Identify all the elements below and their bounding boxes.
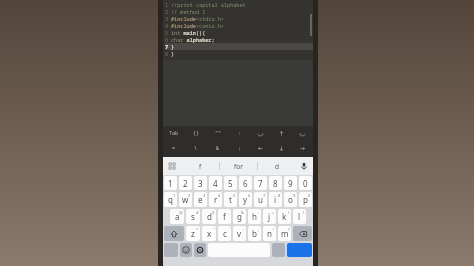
button[interactable]: {} xyxy=(185,126,207,140)
button[interactable]: Period xyxy=(272,243,285,257)
button[interactable]: o xyxy=(284,192,297,207)
staticText: 7 xyxy=(258,178,263,189)
staticText: _ xyxy=(228,210,230,216)
button[interactable]: e xyxy=(194,192,207,207)
button[interactable]: f xyxy=(181,157,219,175)
staticText: 5 xyxy=(165,29,171,36)
button[interactable]: t xyxy=(224,192,237,207)
button[interactable]: h xyxy=(248,209,261,224)
staticText: d xyxy=(207,211,212,222)
staticText: ' xyxy=(229,227,230,233)
button[interactable]: 5 xyxy=(224,176,237,190)
button[interactable]: & xyxy=(207,140,229,157)
staticText: o xyxy=(288,194,293,205)
staticText: u xyxy=(258,194,263,205)
button[interactable]: l xyxy=(293,209,306,224)
button[interactable]: 7 xyxy=(254,176,267,190)
button[interactable]: right xyxy=(292,140,313,157)
button[interactable]: z xyxy=(186,226,200,241)
staticText: t xyxy=(229,194,232,205)
button[interactable]: Backspace xyxy=(293,226,312,241)
button[interactable]: \ xyxy=(185,140,207,157)
button[interactable]: i xyxy=(269,192,282,207)
staticText: m xyxy=(281,228,289,239)
button[interactable]: a xyxy=(170,209,184,224)
button[interactable]: m xyxy=(278,226,291,241)
staticText: ; xyxy=(258,227,260,233)
staticText: & xyxy=(241,210,245,216)
staticText: l xyxy=(298,211,301,222)
button[interactable]: q xyxy=(164,192,177,207)
button[interactable]: n xyxy=(263,226,276,241)
button[interactable]: = xyxy=(163,140,185,157)
staticText: v xyxy=(237,228,242,239)
staticText: 2 xyxy=(165,8,171,15)
button[interactable]: s xyxy=(186,209,200,224)
button[interactable]: 2 xyxy=(179,176,192,190)
staticText: 8 xyxy=(273,178,278,189)
button[interactable]: ; xyxy=(229,140,250,157)
button[interactable]: b xyxy=(248,226,261,241)
button[interactable]: undo xyxy=(250,126,271,140)
staticText: x xyxy=(207,228,212,239)
button[interactable]: Shift xyxy=(164,226,184,241)
button[interactable]: Emoji xyxy=(180,243,192,257)
button[interactable]: 0 xyxy=(299,176,312,190)
staticText: f xyxy=(223,211,226,222)
button[interactable]: 8 xyxy=(269,176,282,190)
staticText: 0 xyxy=(308,193,311,199)
button[interactable]: Enter xyxy=(287,243,312,257)
staticText: n xyxy=(267,228,272,239)
button[interactable]: "" xyxy=(207,126,229,140)
button[interactable]: d xyxy=(202,209,216,224)
staticText: 8 xyxy=(165,50,171,57)
staticText: ( xyxy=(288,210,290,216)
button[interactable]: redo xyxy=(292,126,313,140)
staticText: $ xyxy=(212,210,215,216)
button[interactable]: v xyxy=(233,226,246,241)
button[interactable]: Voice input xyxy=(295,157,313,175)
staticText: #include<stdio.h> xyxy=(171,15,224,22)
staticText: k xyxy=(282,211,287,222)
staticText: h xyxy=(252,211,257,222)
button[interactable]: g xyxy=(233,209,246,224)
button[interactable]: x xyxy=(202,226,216,241)
button[interactable]: 6 xyxy=(239,176,252,190)
button[interactable]: up xyxy=(271,126,292,140)
button[interactable]: Keyboard settings xyxy=(163,157,181,175)
button[interactable]: k xyxy=(278,209,291,224)
staticText: : xyxy=(243,227,245,233)
button[interactable]: left xyxy=(250,140,271,157)
button[interactable]: Settings xyxy=(194,243,206,257)
staticText: 3 xyxy=(203,193,206,199)
button[interactable]: 1 xyxy=(164,176,177,190)
staticText: e xyxy=(198,194,203,205)
staticText: \ xyxy=(194,145,198,152)
staticText: } xyxy=(171,50,175,57)
staticText: 7 xyxy=(165,43,171,50)
button[interactable]: r xyxy=(209,192,222,207)
staticText: q xyxy=(168,194,173,205)
button[interactable]: y xyxy=(239,192,252,207)
staticText: 6 xyxy=(165,36,171,43)
button[interactable]: p xyxy=(299,192,312,207)
button[interactable]: 4 xyxy=(209,176,222,190)
button[interactable]: u xyxy=(254,192,267,207)
button[interactable]: for xyxy=(220,157,257,175)
button[interactable]: : xyxy=(229,126,250,140)
button[interactable]: down xyxy=(271,140,292,157)
button[interactable]: f xyxy=(218,209,231,224)
button[interactable]: 9 xyxy=(284,176,297,190)
button[interactable]: Tab xyxy=(163,126,185,140)
button[interactable]: c xyxy=(218,226,231,241)
button[interactable]: w xyxy=(179,192,192,207)
button[interactable]: d xyxy=(258,157,295,175)
staticText: d xyxy=(275,162,279,171)
button[interactable]: 3 xyxy=(194,176,207,190)
staticText: ; xyxy=(238,145,242,152)
staticText: 1 xyxy=(165,1,171,8)
button[interactable]: Symbols xyxy=(164,243,178,257)
button[interactable]: j xyxy=(263,209,276,224)
staticText: j xyxy=(268,211,271,222)
